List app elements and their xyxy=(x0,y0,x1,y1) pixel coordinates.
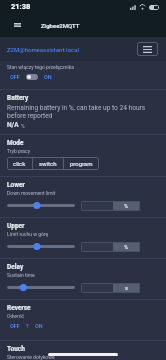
button[interactable]: OFF xyxy=(10,323,20,329)
staticText: Remaining battery in %, can take up to 2… xyxy=(7,104,159,119)
staticText: ON xyxy=(44,74,52,80)
staticText: Odwróć xyxy=(7,313,25,319)
staticText: Sterowanie dotykowe xyxy=(7,354,55,360)
button[interactable]: click xyxy=(7,157,32,170)
staticText: switch xyxy=(39,160,57,167)
staticText: Battery xyxy=(7,94,29,102)
staticText: N/A xyxy=(7,121,19,129)
button[interactable]: ON xyxy=(35,323,43,329)
staticText: Delay xyxy=(7,263,24,271)
staticText: program xyxy=(70,160,93,167)
staticText: % xyxy=(124,244,129,250)
button[interactable]: Lower value xyxy=(81,201,140,211)
staticText: Touch xyxy=(7,345,25,353)
button[interactable]: Lower slider xyxy=(7,200,75,211)
staticText: Limit ruchu w górę xyxy=(7,231,49,237)
staticText: Upper xyxy=(7,222,25,230)
button[interactable]: Delay slider xyxy=(7,282,75,293)
staticText: Reverse xyxy=(7,304,31,312)
staticText: click xyxy=(13,160,26,167)
staticText: Sustain time xyxy=(7,272,35,278)
staticText: % xyxy=(124,203,129,209)
button[interactable]: Upper value xyxy=(81,242,140,252)
staticText: 21:38 xyxy=(11,2,31,11)
staticText: Mode xyxy=(7,139,24,147)
staticText: Z2M@homeassistant.local xyxy=(7,46,79,53)
staticText: OFF xyxy=(10,74,20,80)
staticText: Stan włączy tego przełącznika xyxy=(7,64,75,70)
button[interactable]: ? xyxy=(26,323,29,329)
staticText: Down movement limit xyxy=(7,190,56,196)
button[interactable]: program xyxy=(64,157,99,170)
staticText: % xyxy=(21,123,25,129)
button[interactable]: Upper slider xyxy=(7,241,75,252)
button[interactable]: Delay value xyxy=(81,283,140,293)
button[interactable]: Open navigation menu xyxy=(0,13,35,37)
button[interactable]: State toggle xyxy=(26,74,38,80)
button[interactable]: Device list xyxy=(137,42,158,56)
staticText: s xyxy=(125,285,128,291)
button[interactable]: switch xyxy=(33,157,63,170)
staticText: Lower xyxy=(7,181,25,189)
staticText: Tryb pracy xyxy=(7,148,31,154)
staticText: Zigbee2MQTT xyxy=(41,22,80,29)
